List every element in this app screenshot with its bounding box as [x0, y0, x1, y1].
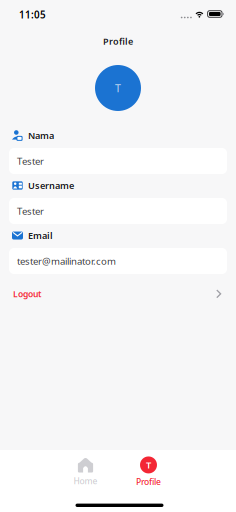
staticText: 11:05 — [19, 8, 46, 21]
staticText: T — [146, 459, 151, 471]
staticText: tester@mailinator.com — [17, 254, 116, 268]
staticText: Profile — [103, 35, 133, 47]
staticText: T — [115, 81, 121, 95]
button[interactable]: Logout — [0, 281, 236, 307]
button[interactable]: Home — [54, 455, 117, 489]
staticText: Email — [28, 229, 53, 242]
staticText: Home — [73, 475, 97, 487]
button[interactable]: T — [117, 455, 180, 489]
staticText: Logout — [13, 288, 41, 300]
staticText: Username — [28, 179, 74, 192]
staticText: Profile — [136, 476, 161, 487]
staticText: Tester — [17, 204, 44, 218]
staticText: Nama — [28, 129, 54, 142]
staticText: Tester — [17, 154, 44, 168]
